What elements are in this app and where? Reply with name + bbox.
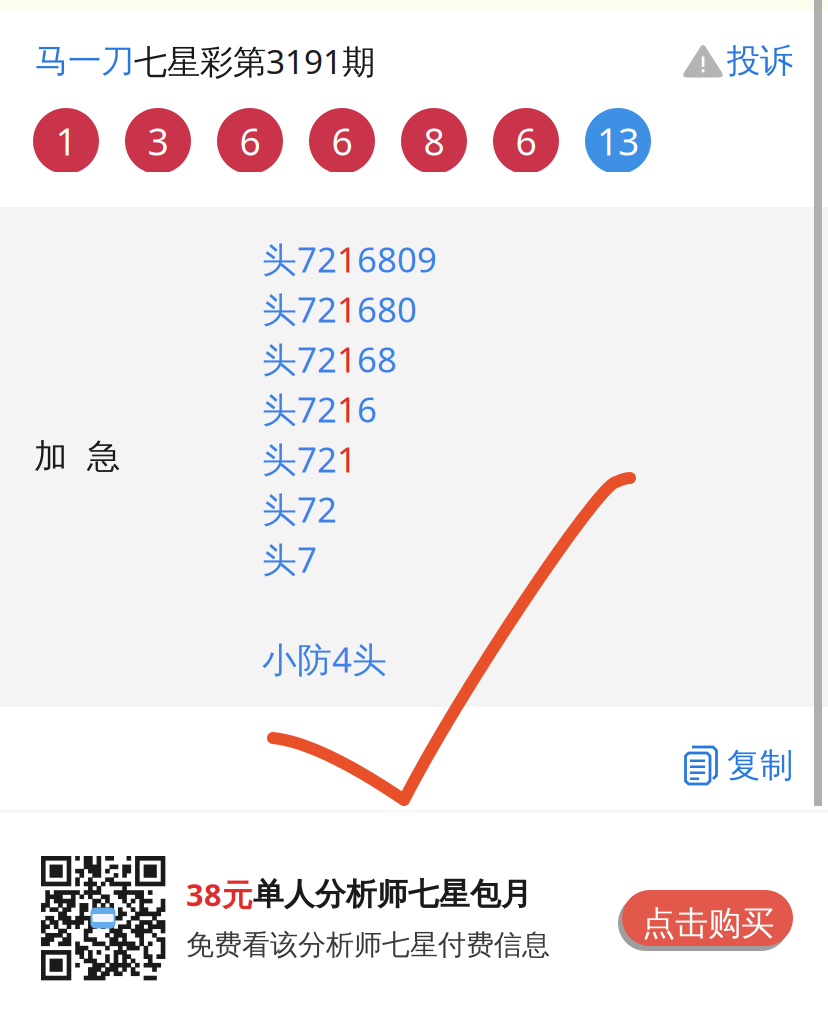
staticText: 复制 xyxy=(727,745,793,786)
staticText: 680 xyxy=(357,286,417,332)
staticText: 3 xyxy=(147,116,168,166)
staticText: 单人分析师七星包月 xyxy=(253,875,532,913)
staticText: 1 xyxy=(337,236,357,282)
button[interactable]: 投诉 xyxy=(682,30,793,91)
staticText: 6 xyxy=(331,116,352,166)
button[interactable]: 点击购买 xyxy=(616,887,791,948)
staticText: 1 xyxy=(337,386,357,432)
staticText: 1 xyxy=(337,336,357,382)
staticText: 1 xyxy=(337,436,357,482)
staticText: 加 急 xyxy=(34,436,120,477)
staticText: 免费看该分析师七星付费信息 xyxy=(186,928,550,962)
staticText: 头72 xyxy=(262,286,337,332)
staticText: 马一刀 xyxy=(35,40,134,81)
staticText: 6 xyxy=(239,116,260,166)
button[interactable]: 马一刀 xyxy=(35,29,375,93)
staticText: 头72 xyxy=(262,386,337,432)
staticText: 七星彩第3191期 xyxy=(134,39,375,83)
staticText: 头72 xyxy=(262,236,337,282)
staticText: 38元 xyxy=(186,874,253,915)
staticText: 68 xyxy=(357,336,397,382)
staticText: 小防4头 xyxy=(262,636,387,682)
staticText: 1 xyxy=(55,116,76,166)
staticText: 投诉 xyxy=(727,40,793,81)
button[interactable]: 复制 xyxy=(683,734,828,796)
staticText: 点击购买 xyxy=(642,903,774,944)
staticText: 头72 xyxy=(262,436,337,482)
staticText: 13 xyxy=(597,116,639,166)
staticText: 8 xyxy=(423,116,444,166)
staticText: 头7 xyxy=(262,536,317,582)
staticText: 6 xyxy=(357,386,377,432)
staticText: 1 xyxy=(337,286,357,332)
staticText: 头72 xyxy=(262,486,337,532)
staticText: 头72 xyxy=(262,336,337,382)
staticText: 6809 xyxy=(357,236,437,282)
staticText: 6 xyxy=(515,116,536,166)
